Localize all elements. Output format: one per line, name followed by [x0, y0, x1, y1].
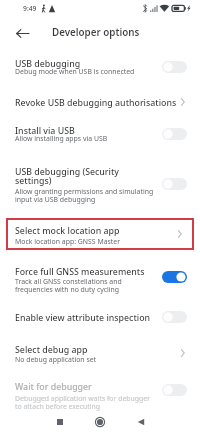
button[interactable]: Force full GNSS measurements: [0, 256, 200, 300]
staticText: Enable view attribute inspection: [15, 312, 151, 324]
staticText: 9:49: [23, 4, 37, 13]
staticText: Mock location app: GNSS Master: [15, 237, 121, 246]
button[interactable]: Select mock location app: [8, 220, 192, 248]
staticText: USB debugging: [15, 58, 81, 70]
button[interactable]: Enable view attribute inspection: [0, 302, 200, 330]
button[interactable]: Back: [8, 20, 36, 46]
button[interactable]: Back: [121, 410, 161, 433]
button[interactable]: Home: [80, 410, 120, 433]
staticText: USB debugging (Security settings): [15, 166, 140, 187]
button[interactable]: Revoke USB debugging authorisations: [0, 88, 200, 114]
staticText: Revoke USB debugging authorisations: [15, 97, 177, 109]
button[interactable]: USB debugging: [0, 48, 200, 86]
staticText: Debug mode when USB is connected: [15, 67, 135, 76]
staticText: Force full GNSS measurements: [15, 266, 145, 278]
staticText: Install via USB: [15, 125, 75, 137]
staticText: Allow installing apps via USB: [15, 134, 108, 143]
staticText: Developer options: [52, 26, 140, 39]
button[interactable]: Install via USB: [0, 115, 200, 151]
staticText: Track all GNSS constellations and freque…: [15, 277, 156, 294]
button[interactable]: USB debugging (Security settings): [0, 155, 200, 213]
button[interactable]: Recent apps: [40, 410, 80, 433]
button[interactable]: Select debug app: [0, 334, 200, 368]
staticText: Debugged application waits for debugger …: [15, 394, 156, 411]
staticText: No debug application set: [15, 355, 97, 364]
button[interactable]: Wait for debugger: [0, 372, 200, 412]
staticText: Select mock location app: [15, 225, 120, 237]
staticText: Wait for debugger: [15, 381, 92, 393]
staticText: Allow granting permissions and simulatin…: [15, 187, 156, 204]
staticText: Select debug app: [15, 344, 88, 356]
